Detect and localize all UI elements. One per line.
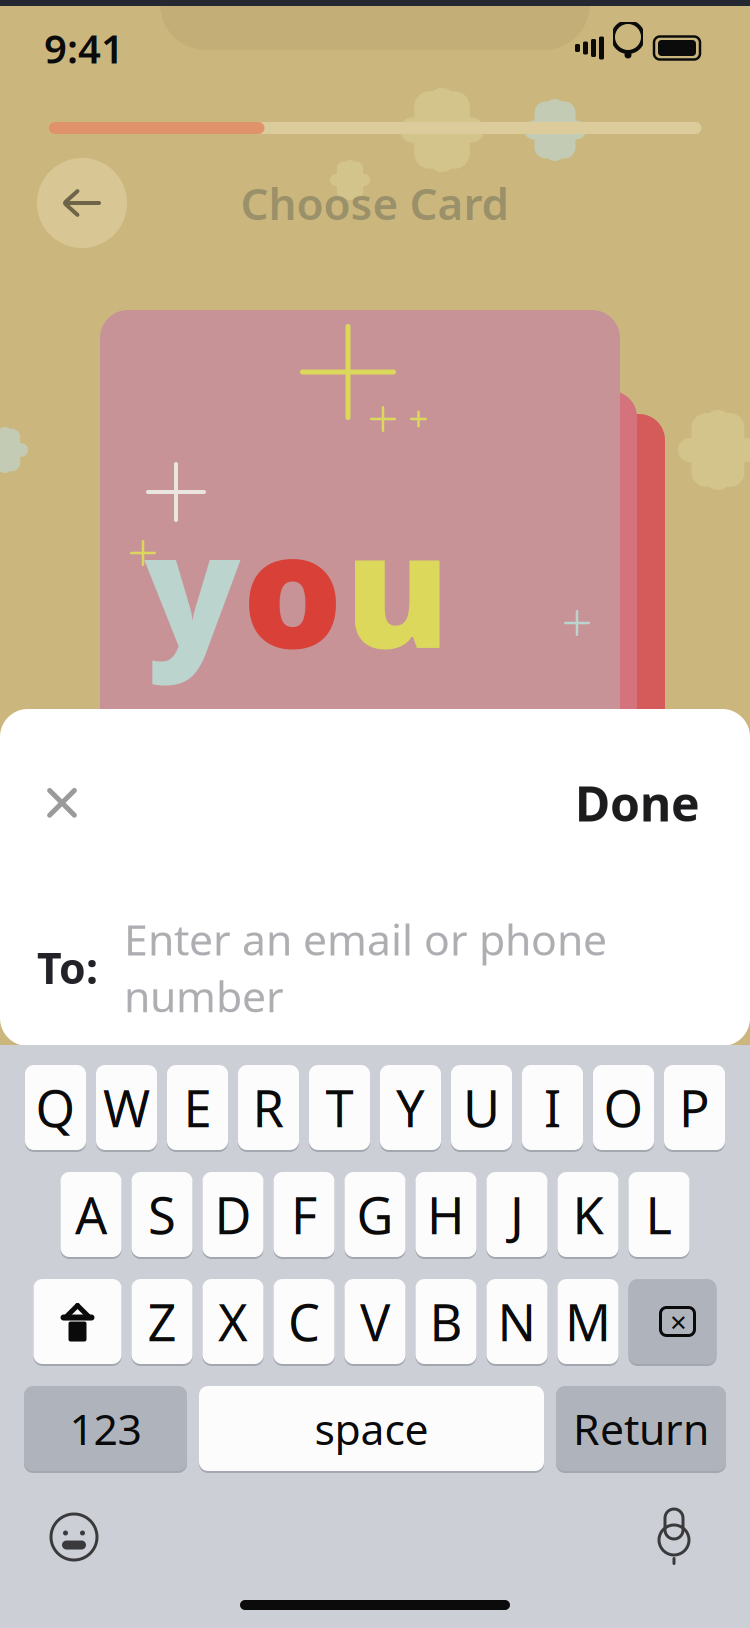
button[interactable]: Y bbox=[380, 1063, 441, 1152]
button[interactable]: B bbox=[415, 1277, 476, 1366]
staticText: Q bbox=[35, 1074, 75, 1141]
staticText: A bbox=[75, 1181, 107, 1248]
staticText: K bbox=[572, 1181, 603, 1248]
staticText: U bbox=[463, 1074, 500, 1141]
staticText: G bbox=[356, 1181, 393, 1248]
button[interactable]: Done bbox=[565, 761, 710, 845]
staticText: space bbox=[314, 1400, 428, 1457]
button[interactable]: Back bbox=[37, 158, 127, 248]
button[interactable]: J bbox=[486, 1170, 547, 1259]
staticText: e bbox=[506, 679, 603, 888]
staticText: 9:41 bbox=[44, 21, 124, 74]
button[interactable]: R bbox=[238, 1063, 299, 1152]
button[interactable]: To: bbox=[0, 889, 750, 1046]
staticText: R bbox=[252, 1074, 284, 1141]
staticText: S bbox=[148, 1181, 176, 1248]
staticText: H bbox=[427, 1181, 465, 1248]
button[interactable]: W bbox=[96, 1063, 157, 1152]
staticText: d bbox=[403, 679, 504, 888]
staticText: a bbox=[303, 679, 401, 888]
staticText: X bbox=[218, 1288, 248, 1355]
staticText: Z bbox=[147, 1288, 176, 1355]
button[interactable]: I bbox=[522, 1063, 583, 1152]
button[interactable]: C bbox=[273, 1277, 334, 1366]
button[interactable]: T bbox=[309, 1063, 370, 1152]
staticText: Y bbox=[396, 1074, 425, 1141]
button[interactable]: Z bbox=[131, 1277, 192, 1366]
staticText: E bbox=[183, 1074, 211, 1141]
staticText: 123 bbox=[69, 1400, 141, 1457]
button[interactable]: V bbox=[344, 1277, 405, 1366]
button[interactable]: Close bbox=[30, 771, 94, 835]
button[interactable]: Q bbox=[25, 1063, 86, 1152]
staticText: × bbox=[670, 1302, 687, 1341]
staticText: m bbox=[144, 679, 301, 888]
staticText: D bbox=[214, 1181, 251, 1248]
button[interactable]: Dictation bbox=[646, 1507, 702, 1567]
button[interactable]: K bbox=[557, 1170, 618, 1259]
button[interactable]: Return bbox=[556, 1384, 726, 1473]
staticText: J bbox=[510, 1181, 524, 1248]
button[interactable]: F bbox=[273, 1170, 334, 1259]
button[interactable]: X bbox=[202, 1277, 263, 1366]
button[interactable]: Delete bbox=[628, 1277, 716, 1366]
staticText: u bbox=[344, 482, 449, 691]
button[interactable]: E bbox=[167, 1063, 228, 1152]
staticText: o bbox=[242, 482, 342, 691]
staticText: Choose Card bbox=[240, 174, 509, 232]
staticText: C bbox=[288, 1288, 320, 1355]
button[interactable]: N bbox=[486, 1277, 547, 1366]
staticText: T bbox=[325, 1074, 353, 1141]
staticText: O bbox=[603, 1074, 643, 1141]
button[interactable]: L bbox=[628, 1170, 689, 1259]
staticText: y bbox=[144, 482, 240, 691]
staticText: B bbox=[429, 1288, 462, 1355]
staticText: Done bbox=[575, 771, 700, 835]
staticText: V bbox=[360, 1288, 390, 1355]
staticText: F bbox=[291, 1181, 317, 1248]
button[interactable]: U bbox=[451, 1063, 512, 1152]
button[interactable]: O bbox=[593, 1063, 654, 1152]
button[interactable]: 123 bbox=[24, 1384, 187, 1473]
staticText: W bbox=[103, 1074, 150, 1141]
button[interactable]: A bbox=[60, 1170, 121, 1259]
staticText: M bbox=[565, 1288, 611, 1355]
button[interactable]: Shift bbox=[33, 1277, 121, 1366]
button[interactable]: M bbox=[557, 1277, 618, 1366]
button[interactable]: G bbox=[344, 1170, 405, 1259]
staticText: I bbox=[544, 1074, 561, 1141]
button[interactable]: space bbox=[199, 1384, 544, 1473]
button[interactable]: Emoji bbox=[46, 1509, 102, 1565]
button[interactable]: D bbox=[202, 1170, 263, 1259]
staticText: P bbox=[679, 1074, 710, 1141]
button[interactable]: H bbox=[415, 1170, 476, 1259]
staticText: Return bbox=[573, 1400, 709, 1457]
staticText: L bbox=[645, 1181, 672, 1248]
staticText: To: bbox=[37, 939, 98, 996]
button[interactable]: S bbox=[131, 1170, 192, 1259]
staticText: N bbox=[497, 1288, 536, 1355]
staticText: Enter an email or phone number bbox=[124, 911, 607, 1024]
button[interactable]: P bbox=[664, 1063, 725, 1152]
